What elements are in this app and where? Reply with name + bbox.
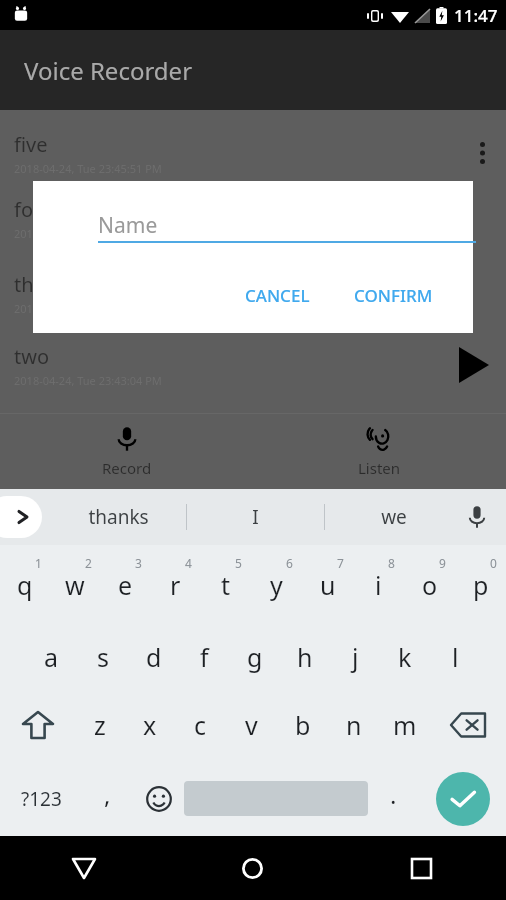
staticText: two xyxy=(14,343,50,370)
button[interactable]: . xyxy=(368,761,419,836)
button[interactable]: s xyxy=(77,617,128,689)
staticText: thanks xyxy=(88,504,149,530)
button[interactable]: p xyxy=(455,545,506,617)
staticText: Listen xyxy=(358,458,401,478)
staticText: r xyxy=(170,568,181,602)
staticText: 11:47 xyxy=(454,4,498,27)
staticText: 9 xyxy=(439,555,446,571)
button[interactable]: i xyxy=(353,545,404,617)
button[interactable]: w xyxy=(50,545,100,617)
button[interactable]: two xyxy=(0,329,506,401)
button[interactable]: o xyxy=(404,545,455,617)
button[interactable]: t xyxy=(200,545,251,617)
staticText: CONFIRM xyxy=(354,284,433,307)
button[interactable]: Emoji xyxy=(133,761,184,836)
staticText: f xyxy=(200,640,209,674)
staticText: I xyxy=(252,504,259,530)
staticText: . xyxy=(390,778,397,811)
staticText: b xyxy=(295,708,311,742)
staticText: 6 xyxy=(286,555,293,571)
staticText: ?123 xyxy=(21,786,62,812)
button[interactable]: I xyxy=(187,489,324,545)
staticText: n xyxy=(346,708,362,742)
button[interactable]: Record xyxy=(0,414,253,489)
staticText: CANCEL xyxy=(245,284,310,307)
button[interactable]: Play xyxy=(452,343,496,387)
staticText: j xyxy=(352,640,359,674)
button[interactable]: b xyxy=(277,689,328,761)
staticText: 4 xyxy=(185,555,192,571)
staticText: l xyxy=(452,640,459,674)
button[interactable]: Shift xyxy=(0,689,75,761)
staticText: 2018-04-24, Tue 23:45:00 PM xyxy=(14,226,162,241)
button[interactable]: More options xyxy=(458,129,506,177)
button[interactable]: c xyxy=(175,689,226,761)
button[interactable]: Home xyxy=(168,836,337,900)
button[interactable]: Voice input xyxy=(460,500,494,534)
button[interactable]: f xyxy=(179,617,230,689)
button[interactable]: g xyxy=(230,617,280,689)
staticText: 3 xyxy=(135,555,142,571)
staticText: 2018-04-24, Tue 23:43:04 PM xyxy=(14,373,162,388)
staticText: we xyxy=(381,504,407,530)
staticText: 0 xyxy=(490,555,497,571)
staticText: y xyxy=(270,568,283,602)
staticText: e xyxy=(118,568,133,602)
staticText: v xyxy=(245,708,258,742)
button[interactable]: CONFIRM xyxy=(344,276,443,315)
button[interactable]: Expand suggestions xyxy=(0,496,42,538)
staticText: u xyxy=(320,568,336,602)
button[interactable]: CANCEL xyxy=(235,276,320,315)
staticText: k xyxy=(398,640,412,674)
staticText: h xyxy=(297,640,313,674)
button[interactable]: q xyxy=(0,545,50,617)
button[interactable]: Backspace xyxy=(430,689,506,761)
button[interactable]: m xyxy=(379,689,430,761)
button[interactable]: Enter xyxy=(419,761,506,836)
button[interactable]: r xyxy=(150,545,200,617)
button[interactable]: Recents xyxy=(337,836,506,900)
button[interactable]: we xyxy=(325,489,462,545)
button[interactable]: v xyxy=(226,689,277,761)
button[interactable]: j xyxy=(330,617,380,689)
button[interactable]: l xyxy=(430,617,480,689)
staticText: , xyxy=(104,778,111,811)
staticText: z xyxy=(94,708,106,742)
button[interactable]: a xyxy=(26,617,77,689)
button[interactable]: h xyxy=(280,617,330,689)
staticText: 2018-04-24, Tue 23:45:51 PM xyxy=(14,161,162,176)
button[interactable]: ?123 xyxy=(0,761,82,836)
button[interactable]: u xyxy=(302,545,353,617)
button[interactable]: d xyxy=(128,617,179,689)
staticText: o xyxy=(422,568,438,602)
staticText: five xyxy=(14,131,48,158)
button[interactable]: n xyxy=(328,689,379,761)
staticText: Record xyxy=(102,458,152,478)
button[interactable]: y xyxy=(251,545,302,617)
staticText: c xyxy=(194,708,207,742)
staticText: q xyxy=(17,568,33,602)
button[interactable]: k xyxy=(380,617,430,689)
button[interactable]: three xyxy=(0,257,506,329)
staticText: i xyxy=(375,568,382,602)
staticText: 7 xyxy=(337,555,344,571)
button[interactable]: x xyxy=(125,689,175,761)
button[interactable]: five xyxy=(0,110,506,182)
staticText: Name xyxy=(98,211,158,240)
button[interactable]: Back xyxy=(0,836,168,900)
staticText: g xyxy=(247,640,263,674)
button[interactable]: z xyxy=(75,689,125,761)
staticText: d xyxy=(146,640,162,674)
staticText: 5 xyxy=(235,555,242,571)
staticText: 2018-04-24, Tue 23:44:00 PM xyxy=(14,301,162,316)
button[interactable]: four xyxy=(0,182,506,254)
button[interactable]: , xyxy=(82,761,133,836)
staticText: x xyxy=(143,708,157,742)
button[interactable]: Listen xyxy=(253,414,506,489)
staticText: 2 xyxy=(85,555,92,571)
button[interactable]: thanks xyxy=(50,489,186,545)
button[interactable]: e xyxy=(100,545,150,617)
staticText: 8 xyxy=(388,555,395,571)
staticText: 1 xyxy=(35,555,42,571)
